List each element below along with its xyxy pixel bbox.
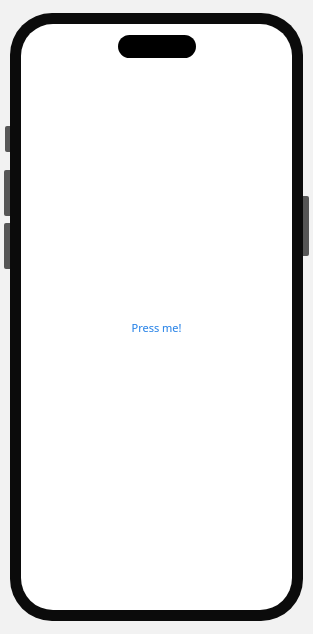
- staticText: Press me!: [131, 320, 182, 335]
- button[interactable]: Press me!: [131, 320, 182, 335]
